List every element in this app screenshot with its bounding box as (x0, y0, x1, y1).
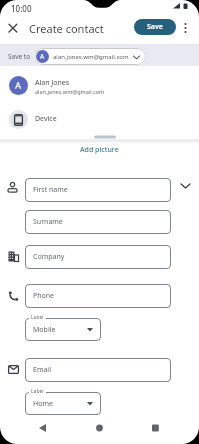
button[interactable]: A (34, 48, 146, 65)
button[interactable]: Add picture (0, 142, 199, 158)
staticText: alan.jones.wm@gmail.com (35, 88, 105, 95)
staticText: Alan Jones (35, 78, 70, 88)
staticText: Home (33, 399, 53, 409)
staticText: First name (33, 185, 68, 195)
staticText: Device (35, 114, 57, 124)
staticText: Label (31, 314, 44, 321)
button[interactable]: Save (134, 19, 176, 35)
staticText: Add picture (80, 145, 119, 155)
staticText: Surname (33, 217, 63, 227)
button[interactable]: Home (25, 392, 101, 415)
button[interactable] (30, 418, 54, 438)
button[interactable] (177, 178, 194, 195)
button[interactable]: A (0, 70, 199, 102)
button[interactable]: Device (0, 104, 199, 134)
staticText: A (40, 52, 45, 61)
staticText: Company (33, 252, 65, 262)
button[interactable]: Mobile (25, 318, 101, 341)
button[interactable] (144, 418, 168, 438)
button[interactable] (4, 19, 22, 37)
button[interactable]: Surname (25, 210, 171, 234)
button[interactable]: Phone (25, 284, 171, 308)
staticText: 10:00 (11, 3, 32, 14)
button[interactable] (179, 21, 192, 34)
button[interactable]: First name (25, 178, 171, 202)
staticText: A (15, 79, 22, 92)
staticText: Create contact (29, 21, 104, 36)
button[interactable]: Company (25, 245, 171, 269)
staticText: Save (147, 22, 163, 32)
button[interactable]: Email (25, 358, 171, 382)
button[interactable] (88, 418, 112, 438)
staticText: Label (31, 388, 44, 395)
staticText: Phone (33, 291, 55, 301)
staticText: alan.jones.wm@gmail.com (53, 53, 129, 61)
staticText: Save to (8, 52, 31, 61)
staticText: Email (33, 365, 51, 375)
staticText: Mobile (33, 325, 56, 335)
